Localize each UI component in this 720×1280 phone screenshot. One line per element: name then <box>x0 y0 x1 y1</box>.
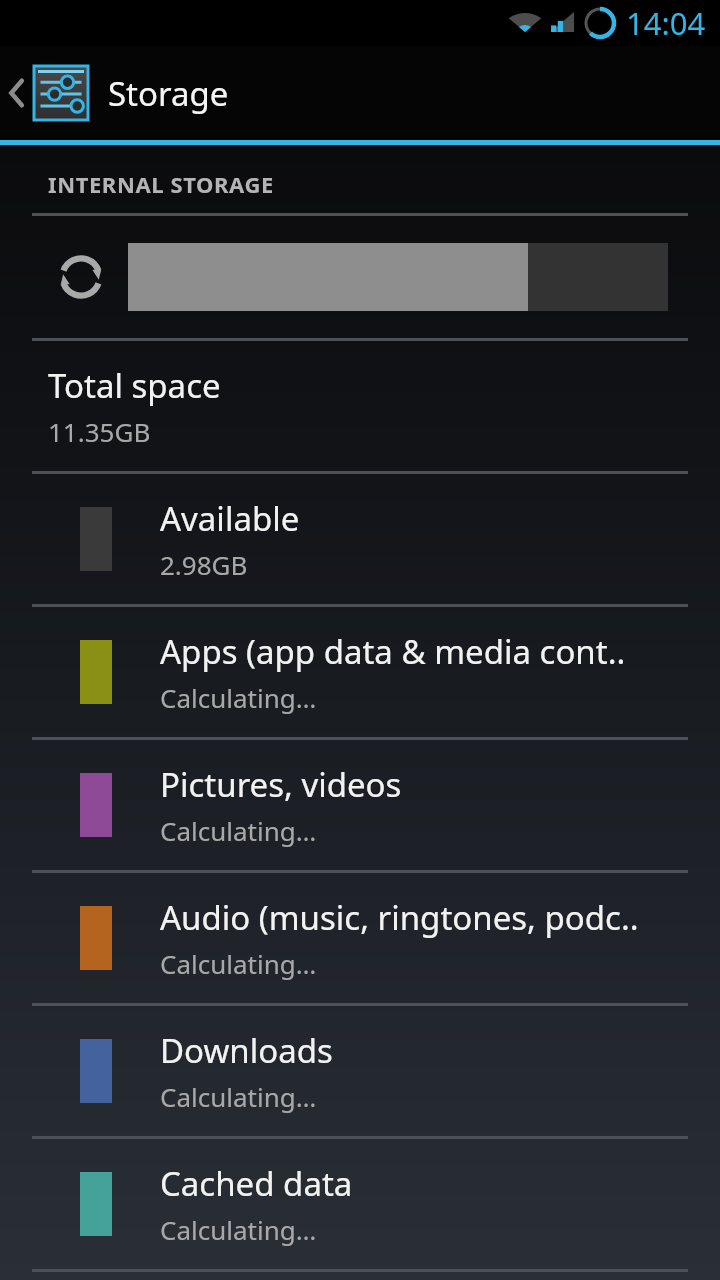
button[interactable] <box>0 216 720 338</box>
staticText: Apps (app data & media cont.. <box>160 629 626 674</box>
staticText: Calculating… <box>160 680 317 715</box>
staticText: Calculating… <box>160 1212 317 1247</box>
staticText: 2.98GB <box>160 547 248 582</box>
staticText: Downloads <box>160 1028 333 1073</box>
staticText: Available <box>160 496 300 541</box>
staticText: INTERNAL STORAGE <box>48 169 274 199</box>
staticText: Total space <box>48 363 221 408</box>
button[interactable]: Apps (app data & media cont.. <box>0 607 720 737</box>
staticText: Calculating… <box>160 946 317 981</box>
button[interactable]: Total space <box>0 341 720 471</box>
staticText: Calculating… <box>160 1079 317 1114</box>
button[interactable]: Downloads <box>0 1006 720 1136</box>
staticText: 14:04 <box>626 2 706 44</box>
staticText: Storage <box>108 71 229 116</box>
staticText: Calculating… <box>160 813 317 848</box>
staticText: Cached data <box>160 1161 353 1206</box>
button[interactable]: Audio (music, ringtones, podc.. <box>0 873 720 1003</box>
staticText: 11.35GB <box>48 414 151 449</box>
staticText: Audio (music, ringtones, podc.. <box>160 895 639 940</box>
staticText: Pictures, videos <box>160 762 402 807</box>
button[interactable]: Available <box>0 474 720 604</box>
button[interactable]: Pictures, videos <box>0 740 720 870</box>
button[interactable]: Cached data <box>0 1139 720 1269</box>
button[interactable]: Navigate up <box>0 46 720 140</box>
